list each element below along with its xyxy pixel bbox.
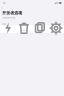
staticText: 这些选项仅适用于开发和调试。	[2, 17, 16, 18]
staticText: 9:41	[3, 2, 6, 4]
staticText: 开发者选项	[2, 10, 22, 15]
button[interactable]: 缓存	[16, 27, 32, 32]
button[interactable]: 日志	[32, 27, 48, 32]
button[interactable]: Back	[0, 6, 8, 10]
staticText: 缓存	[23, 30, 25, 31]
staticText: 性能	[7, 30, 9, 31]
button[interactable]: 性能	[0, 27, 16, 32]
staticText: 日志	[39, 30, 41, 31]
staticText: 配置	[55, 30, 57, 31]
button[interactable]: 配置	[48, 27, 64, 32]
staticText: 快捷操作	[2, 23, 6, 25]
